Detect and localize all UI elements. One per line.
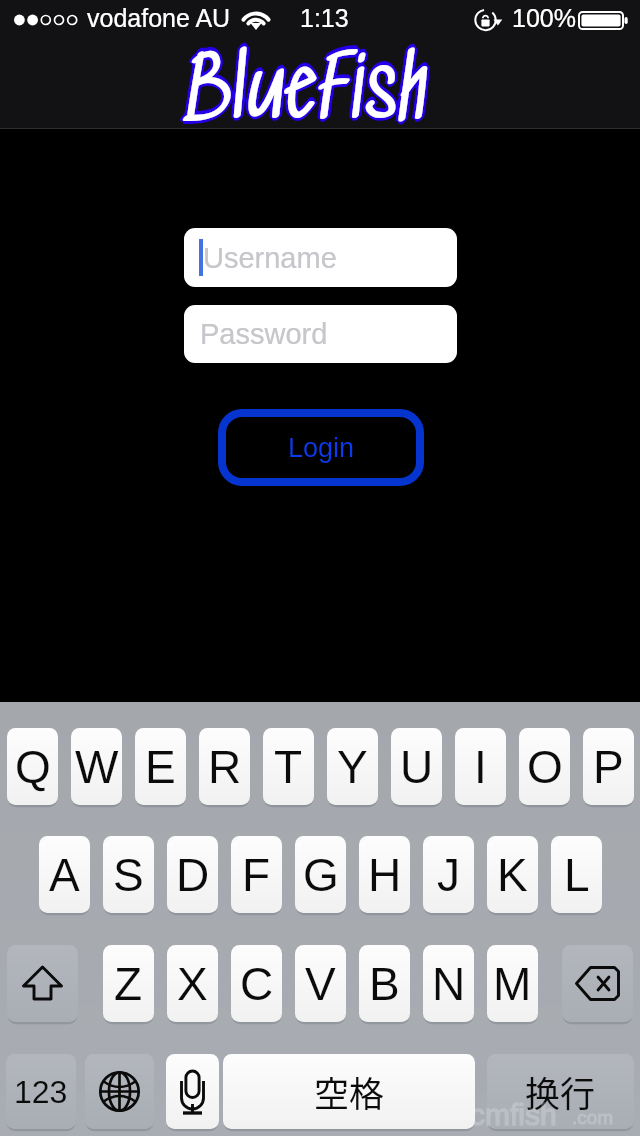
- button[interactable]: I: [455, 728, 506, 805]
- button[interactable]: Backspace: [562, 945, 633, 1022]
- button[interactable]: X: [167, 945, 218, 1022]
- button[interactable]: 123: [6, 1054, 76, 1129]
- staticText: J: [437, 849, 460, 900]
- staticText: 换行: [525, 1066, 596, 1117]
- button[interactable]: L: [551, 836, 602, 913]
- staticText: I: [474, 741, 487, 792]
- button[interactable]: S: [103, 836, 154, 913]
- button[interactable]: M: [487, 945, 538, 1022]
- button[interactable]: U: [391, 728, 442, 805]
- staticText: V: [305, 958, 336, 1009]
- button[interactable]: T: [263, 728, 314, 805]
- button[interactable]: Y: [327, 728, 378, 805]
- staticText: W: [75, 741, 119, 792]
- staticText: S: [113, 849, 144, 900]
- button[interactable]: D: [167, 836, 218, 913]
- staticText: K: [497, 849, 528, 900]
- staticText: Z: [114, 958, 143, 1009]
- button[interactable]: Q: [7, 728, 58, 805]
- staticText: N: [432, 958, 466, 1009]
- staticText: R: [208, 741, 242, 792]
- staticText: T: [274, 741, 303, 792]
- staticText: C: [240, 958, 274, 1009]
- staticText: L: [564, 849, 590, 900]
- button[interactable]: Dictation: [166, 1054, 219, 1129]
- button[interactable]: 空格: [223, 1054, 475, 1129]
- staticText: Login: [288, 433, 355, 463]
- staticText: Username: [203, 242, 337, 274]
- button[interactable]: F: [231, 836, 282, 913]
- staticText: U: [400, 741, 434, 792]
- button[interactable]: N: [423, 945, 474, 1022]
- button[interactable]: Username: [184, 228, 457, 287]
- button[interactable]: C: [231, 945, 282, 1022]
- button[interactable]: R: [199, 728, 250, 805]
- staticText: B: [369, 958, 400, 1009]
- button[interactable]: Change keyboard: [85, 1054, 154, 1129]
- staticText: cmfish: [470, 1098, 557, 1132]
- button[interactable]: H: [359, 836, 410, 913]
- button[interactable]: A: [39, 836, 90, 913]
- staticText: E: [145, 741, 176, 792]
- button[interactable]: E: [135, 728, 186, 805]
- staticText: 空格: [314, 1066, 385, 1117]
- staticText: 1:13: [300, 4, 349, 32]
- staticText: Password: [200, 318, 328, 350]
- button[interactable]: W: [71, 728, 122, 805]
- button[interactable]: G: [295, 836, 346, 913]
- staticText: M: [493, 958, 532, 1009]
- staticText: G: [303, 849, 339, 900]
- button[interactable]: B: [359, 945, 410, 1022]
- button[interactable]: J: [423, 836, 474, 913]
- button[interactable]: Z: [103, 945, 154, 1022]
- staticText: Q: [15, 741, 51, 792]
- staticText: P: [593, 741, 624, 792]
- button[interactable]: P: [583, 728, 634, 805]
- button[interactable]: Login: [218, 409, 424, 486]
- staticText: vodafone AU: [87, 4, 231, 32]
- staticText: D: [176, 849, 210, 900]
- staticText: 100%: [512, 4, 576, 32]
- staticText: .com: [572, 1107, 614, 1128]
- button[interactable]: K: [487, 836, 538, 913]
- staticText: 123: [14, 1074, 68, 1110]
- button[interactable]: O: [519, 728, 570, 805]
- button[interactable]: Password: [184, 305, 457, 363]
- staticText: F: [242, 849, 271, 900]
- button[interactable]: Shift: [7, 945, 78, 1022]
- staticText: H: [368, 849, 402, 900]
- staticText: X: [177, 958, 208, 1009]
- button[interactable]: 换行: [487, 1054, 634, 1129]
- staticText: Y: [337, 741, 368, 792]
- staticText: O: [527, 741, 563, 792]
- staticText: A: [49, 849, 80, 900]
- button[interactable]: V: [295, 945, 346, 1022]
